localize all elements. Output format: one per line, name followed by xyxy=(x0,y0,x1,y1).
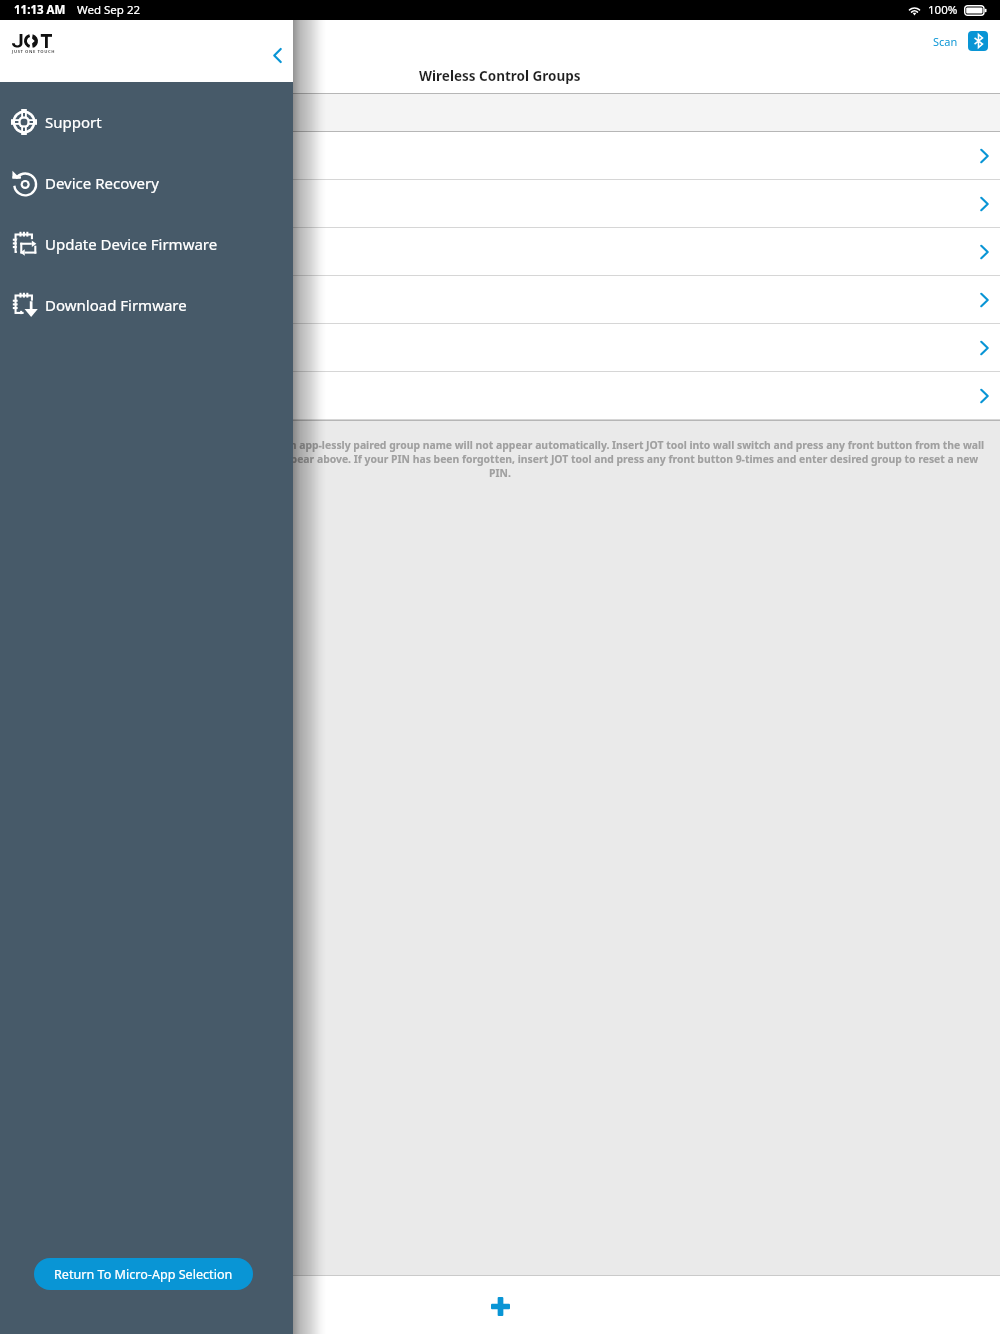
staticText: Return To Micro-App Selection xyxy=(54,1266,233,1283)
button[interactable] xyxy=(0,276,1000,324)
staticText: Groups must be paired with the app first… xyxy=(12,438,988,480)
button[interactable]: Download Firmware xyxy=(0,274,293,335)
button[interactable]: Add group xyxy=(482,1288,518,1324)
button[interactable]: Close navigation drawer xyxy=(260,38,294,72)
button[interactable]: Return To Micro-App Selection xyxy=(34,1258,253,1290)
button[interactable]: Scan xyxy=(933,31,988,51)
button[interactable] xyxy=(0,228,1000,276)
staticText: Download Firmware xyxy=(45,295,187,315)
staticText: Scan xyxy=(933,34,958,49)
button[interactable] xyxy=(0,180,1000,228)
button[interactable]: Update Device Firmware xyxy=(0,213,293,274)
button[interactable] xyxy=(0,372,1000,420)
button[interactable]: Device Recovery xyxy=(0,152,293,213)
staticText: Support xyxy=(45,112,102,132)
button[interactable] xyxy=(0,132,1000,180)
staticText: 100% xyxy=(928,2,958,18)
staticText: Device Recovery xyxy=(45,173,159,193)
button[interactable] xyxy=(0,324,1000,372)
staticText: 11:13 AM xyxy=(14,2,66,18)
button[interactable]: Support xyxy=(0,91,293,152)
staticText: Wed Sep 22 xyxy=(77,2,141,18)
staticText: Wireless Control Groups xyxy=(419,67,581,85)
staticText: Update Device Firmware xyxy=(45,234,218,254)
staticText: JUST ONE TOUCH xyxy=(12,49,55,55)
